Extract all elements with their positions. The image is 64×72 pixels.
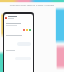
other: App icon	[5, 17, 7, 19]
staticText: Chat with your team in a safer AI model	[8, 3, 56, 6]
button[interactable]: App icon	[5, 16, 32, 19]
